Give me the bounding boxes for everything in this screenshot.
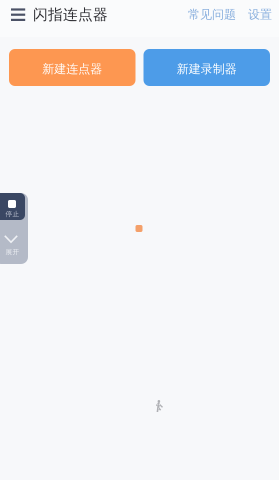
- button[interactable]: 停止: [0, 193, 25, 220]
- button[interactable]: 设置: [240, 0, 276, 28]
- staticText: 停止: [5, 210, 19, 218]
- staticText: 新建录制器: [177, 62, 237, 76]
- button[interactable]: 新建连点器: [9, 49, 135, 86]
- staticText: 新建连点器: [42, 62, 102, 76]
- staticText: 闪指连点器: [33, 5, 108, 23]
- staticText: 常见问题: [188, 7, 236, 22]
- button[interactable]: 常见问题: [184, 0, 240, 28]
- button[interactable]: Menu: [6, 0, 30, 28]
- staticText: 展开: [5, 248, 19, 256]
- button[interactable]: 新建录制器: [143, 49, 270, 86]
- button[interactable]: 展开: [0, 222, 26, 264]
- staticText: 设置: [248, 7, 272, 22]
